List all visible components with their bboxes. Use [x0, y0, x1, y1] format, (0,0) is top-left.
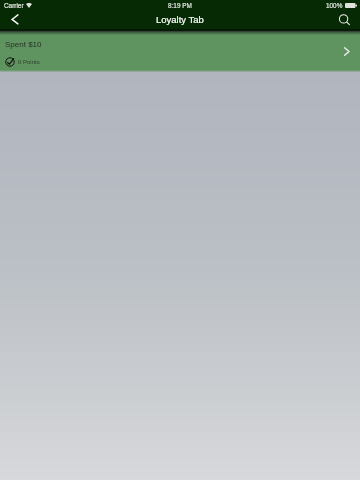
staticText: 8:19 PM — [168, 2, 192, 9]
staticText: 100% — [326, 2, 343, 9]
button[interactable]: Search — [334, 10, 360, 30]
staticText: Carrier — [4, 2, 24, 9]
staticText: Loyalty Tab — [156, 14, 204, 25]
button[interactable]: Spent $10 — [0, 30, 360, 72]
staticText: Spent $10 — [5, 40, 42, 49]
staticText: 0 Points — [18, 59, 40, 66]
button[interactable]: Back — [0, 10, 28, 30]
